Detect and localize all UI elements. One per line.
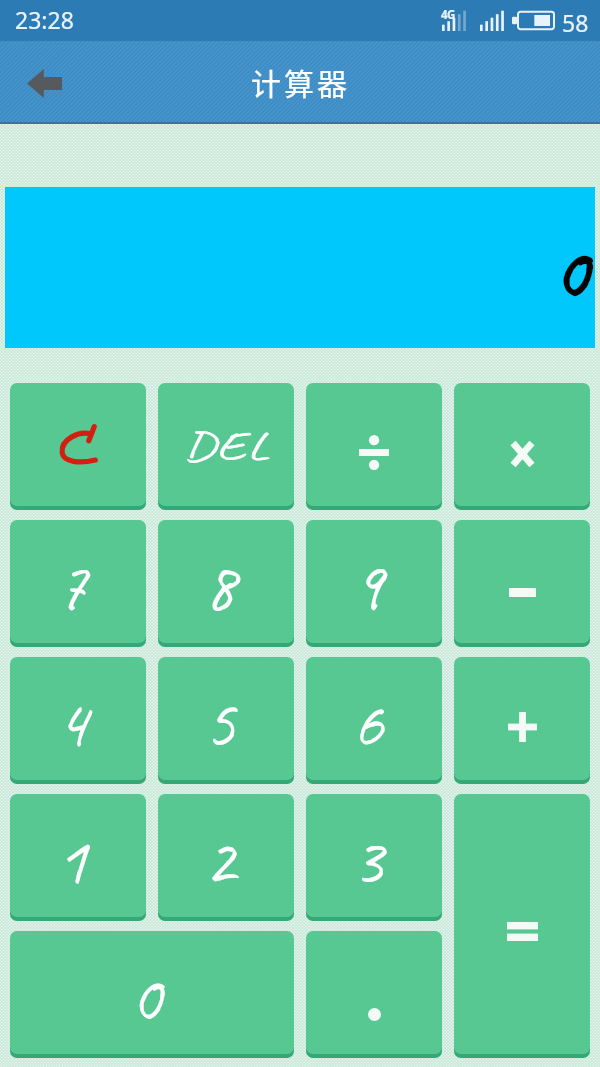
staticText: 7	[56, 544, 87, 630]
staticText: 4G	[441, 7, 455, 23]
button[interactable]: 7	[10, 520, 146, 643]
button[interactable]: 0	[10, 931, 294, 1054]
button[interactable]: Decimal point	[306, 931, 442, 1054]
button[interactable]: Multiply	[454, 383, 590, 506]
staticText: 4	[56, 681, 87, 767]
staticText: 0	[130, 955, 161, 1041]
staticText: 58	[562, 7, 589, 38]
button[interactable]: 8	[158, 520, 294, 643]
button[interactable]: Equals	[454, 794, 590, 1054]
staticText: DEL	[182, 422, 269, 471]
staticText: 计算器	[251, 60, 350, 103]
button[interactable]: DEL	[158, 383, 294, 506]
staticText: 0	[554, 224, 588, 319]
staticText: 1	[56, 818, 87, 904]
button[interactable]: 3	[306, 794, 442, 917]
button[interactable]: 4	[10, 657, 146, 780]
button[interactable]: Add	[454, 657, 590, 780]
button[interactable]: Clear	[10, 383, 146, 506]
button[interactable]: 9	[306, 520, 442, 643]
staticText: 9	[352, 544, 383, 630]
button[interactable]: 1	[10, 794, 146, 917]
button[interactable]: 2	[158, 794, 294, 917]
button[interactable]: Divide	[306, 383, 442, 506]
staticText: 23:28	[15, 4, 74, 35]
staticText: 5	[204, 681, 235, 767]
staticText: 8	[204, 544, 235, 630]
staticText: 6	[352, 681, 383, 767]
staticText: 3	[352, 818, 383, 904]
button[interactable]: Subtract	[454, 520, 590, 643]
button[interactable]: 5	[158, 657, 294, 780]
button[interactable]: 6	[306, 657, 442, 780]
staticText: 2	[204, 818, 235, 904]
button[interactable]: Back	[9, 50, 79, 116]
